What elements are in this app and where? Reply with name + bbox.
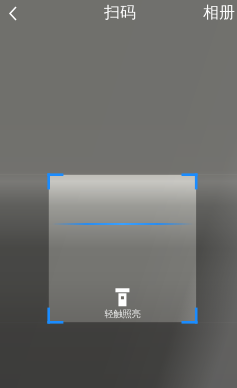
- button[interactable]: 轻触照亮: [90, 288, 154, 320]
- button[interactable]: Back: [0, 0, 27, 25]
- staticText: 扫码: [104, 3, 136, 22]
- button[interactable]: 相册: [191, 0, 235, 25]
- staticText: 轻触照亮: [104, 308, 140, 320]
- staticText: 相册: [203, 3, 235, 22]
